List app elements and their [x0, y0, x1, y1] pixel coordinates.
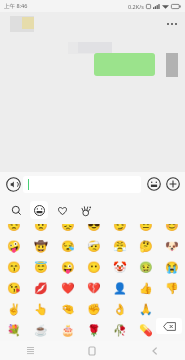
staticText: 🤡 [113, 261, 127, 274]
button[interactable]: 👌 [107, 300, 133, 319]
staticText: 🤔 [139, 240, 153, 253]
button[interactable]: 🎂 [54, 321, 81, 340]
button[interactable]: Sticker gallery [77, 202, 94, 219]
staticText: 💊 [139, 324, 153, 337]
staticText: 😶 [87, 261, 101, 274]
staticText: 💔 [87, 282, 101, 295]
staticText: 😤 [113, 240, 127, 253]
staticText: 👆 [34, 303, 48, 316]
button[interactable]: 😶 [81, 258, 107, 277]
button[interactable]: ❤️ [54, 279, 81, 298]
button[interactable]: 🙏 [133, 300, 159, 319]
button[interactable]: 🤪 [0, 237, 27, 256]
staticText: 😑 [139, 224, 153, 232]
staticText: 🎂 [61, 324, 75, 337]
staticText: 😭 [165, 261, 179, 274]
staticText: 😎 [87, 224, 101, 232]
button[interactable]: 😜 [54, 258, 81, 277]
staticText: 💋 [34, 282, 48, 295]
button[interactable]: 😘 [0, 279, 27, 298]
button[interactable]: 💔 [81, 279, 107, 298]
staticText: 🤪 [7, 240, 21, 253]
button[interactable]: ☕ [27, 321, 54, 340]
button[interactable]: Home [61, 341, 123, 360]
staticText: 🌹 [87, 324, 101, 337]
button[interactable]: 😪 [54, 237, 81, 256]
staticText: 😘 [7, 282, 21, 295]
button[interactable]: 🥀 [107, 321, 133, 340]
button[interactable]: 👤 [107, 279, 133, 298]
button[interactable]: More functions [165, 176, 181, 192]
staticText: 上午 8:46 [4, 2, 28, 10]
staticText: 😏 [113, 224, 127, 232]
button[interactable]: Back [123, 341, 185, 360]
staticText: 👤 [113, 282, 127, 295]
staticText: ❤️ [61, 282, 75, 295]
button[interactable]: Voice message [5, 176, 21, 192]
button[interactable]: 😒 [0, 224, 27, 235]
button[interactable]: ✌️ [0, 300, 27, 319]
button[interactable]: 😞 [54, 224, 81, 235]
staticText: 0.2K/s [128, 3, 144, 10]
staticText: 🙏 [139, 303, 153, 316]
button[interactable]: 🐶 [159, 237, 185, 256]
button[interactable]: Emoji [146, 176, 162, 192]
staticText: 🤠 [34, 240, 48, 253]
button[interactable] [10, 16, 34, 32]
button[interactable]: 🤡 [107, 258, 133, 277]
staticText: 👎 [165, 282, 179, 295]
button[interactable]: 👆 [27, 300, 54, 319]
staticText: 😇 [34, 261, 48, 274]
button[interactable]: Search emoji [8, 202, 25, 219]
button[interactable]: 🤔 [133, 237, 159, 256]
button[interactable]: Smileys [30, 201, 48, 219]
staticText: 🥀 [113, 324, 127, 337]
button[interactable]: 😎 [81, 224, 107, 235]
staticText: 💐 [7, 324, 21, 337]
staticText: 🐶 [165, 240, 179, 253]
button[interactable]: 😏 [107, 224, 133, 235]
button[interactable]: 😟 [27, 224, 54, 235]
button[interactable] [94, 53, 155, 76]
button[interactable]: 🤕 [81, 237, 107, 256]
button[interactable]: Favourite stickers [54, 202, 71, 219]
staticText: 🤕 [87, 240, 101, 253]
staticText: 😒 [7, 224, 21, 232]
button[interactable]: 💐 [0, 321, 27, 340]
button[interactable]: More options [167, 23, 177, 25]
staticText: 👍 [139, 282, 153, 295]
button[interactable]: 😊 [159, 224, 185, 235]
staticText: 😪 [61, 240, 75, 253]
staticText: 😜 [61, 261, 75, 274]
button[interactable]: 👍 [133, 279, 159, 298]
button[interactable]: 💋 [27, 279, 54, 298]
button[interactable]: Recent apps [0, 341, 61, 360]
button[interactable] [159, 321, 185, 340]
staticText: ✌️ [7, 303, 21, 316]
staticText: 🤏 [61, 303, 75, 316]
button[interactable]: 😑 [133, 224, 159, 235]
button[interactable]: 😙 [0, 258, 27, 277]
button[interactable]: Backspace [156, 318, 182, 334]
button[interactable]: 👎 [159, 279, 185, 298]
button[interactable]: 😤 [107, 237, 133, 256]
staticText: 👌 [113, 303, 127, 316]
button[interactable]: 🌹 [81, 321, 107, 340]
button[interactable]: 🤢 [133, 258, 159, 277]
button[interactable]: 😭 [159, 258, 185, 277]
button[interactable]: 🤠 [27, 237, 54, 256]
button[interactable]: 💊 [133, 321, 159, 340]
staticText: 😟 [34, 224, 48, 232]
staticText: ✊ [87, 303, 101, 316]
staticText: 🤢 [139, 261, 153, 274]
staticText: 😊 [165, 224, 179, 232]
button[interactable]: 😇 [27, 258, 54, 277]
button[interactable]: 🤏 [54, 300, 81, 319]
button[interactable]: ✊ [81, 300, 107, 319]
staticText: 😞 [61, 224, 75, 232]
staticText: ☕ [34, 324, 48, 337]
staticText: 😙 [7, 261, 21, 274]
button[interactable] [23, 176, 141, 193]
